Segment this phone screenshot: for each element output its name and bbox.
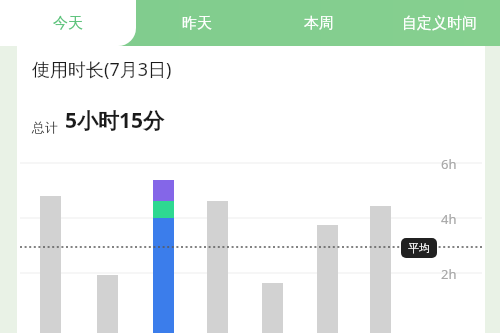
staticText: 今天 — [53, 14, 83, 33]
staticText: 昨天 — [182, 14, 212, 33]
button[interactable]: 本周 — [258, 0, 379, 46]
staticText: 5小时15分 — [65, 106, 165, 135]
staticText: 2h — [441, 265, 457, 283]
staticText: 使用时长(7月3日) — [32, 57, 172, 82]
button[interactable]: 昨天 — [136, 0, 258, 46]
staticText: 4h — [441, 210, 457, 228]
staticText: 平均 — [408, 241, 430, 255]
button[interactable]: 今天 — [0, 0, 136, 46]
staticText: 总计 — [32, 119, 58, 135]
button[interactable]: 自定义时间 — [379, 0, 500, 46]
staticText: 自定义时间 — [402, 14, 477, 33]
staticText: 本周 — [304, 14, 334, 33]
button[interactable]: 平均 — [401, 238, 437, 258]
staticText: 6h — [441, 155, 457, 173]
